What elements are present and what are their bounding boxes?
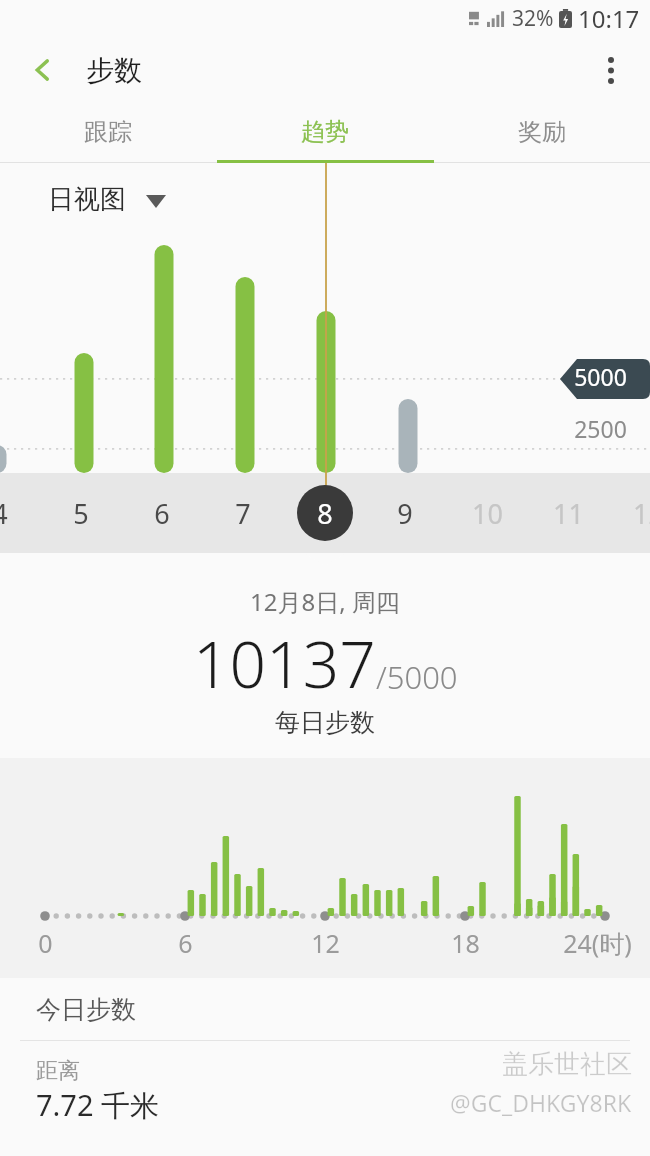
staticText: 6 [178,926,193,960]
button[interactable]: 10 [447,473,527,553]
staticText: 日视图 [48,183,126,216]
staticText: 9 [397,495,413,532]
staticText: 7 [235,495,251,532]
staticText: 6 [154,495,170,532]
button[interactable]: Back [18,45,68,95]
staticText: @GC_DHKGY8RK [450,1087,632,1118]
staticText: 奖励 [518,117,566,147]
button[interactable]: 5 [41,473,121,553]
staticText: 10 [472,495,503,532]
button[interactable]: 8 [285,473,365,553]
staticText: 10137 [193,620,376,707]
button[interactable]: 7 [203,473,283,553]
staticText: 5 [73,495,89,532]
staticText: 10:17 [578,2,640,35]
staticText: 18 [451,926,480,960]
button[interactable]: More options [586,45,636,95]
staticText: 5000 [574,361,627,392]
button[interactable]: 趋势 [216,104,433,160]
staticText: 距离 [36,1057,80,1085]
button[interactable]: 11 [528,473,608,553]
staticText: 跟踪 [84,117,132,147]
button[interactable]: 奖励 [433,104,650,160]
staticText: 12 [633,495,650,532]
staticText: 11 [553,495,584,532]
staticText: 8 [317,495,333,532]
staticText: 7.72 千米 [36,1085,160,1125]
staticText: 每日步数 [275,707,375,738]
staticText: /5000 [376,656,458,698]
staticText: 盖乐世社区 [502,1048,632,1081]
button[interactable]: 9 [365,473,445,553]
button[interactable]: 4 [0,473,40,553]
staticText: 趋势 [301,117,349,147]
staticText: 24(时) [563,926,632,960]
button[interactable]: 12 [608,473,650,553]
button[interactable]: 今日步数 [0,978,650,1040]
staticText: 12 [311,926,340,960]
staticText: 步数 [86,53,142,88]
button[interactable]: 跟踪 [0,104,216,160]
button[interactable]: 6 [122,473,202,553]
staticText: 4 [0,495,8,532]
staticText: 2500 [574,413,627,444]
staticText: 0 [38,926,53,960]
staticText: 12月8日, 周四 [250,585,400,618]
staticText: 32% [512,4,554,33]
staticText: 今日步数 [36,994,136,1025]
